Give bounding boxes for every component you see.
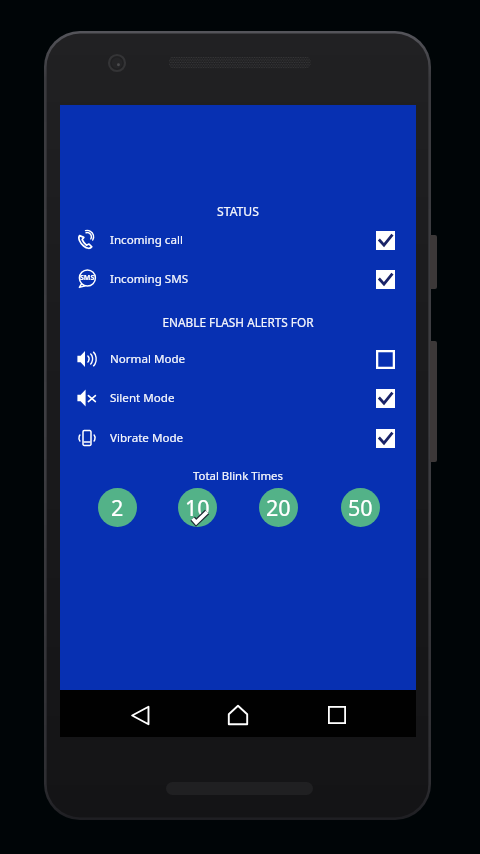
button[interactable]: Back	[118, 693, 162, 737]
button[interactable]: Vibrate Mode	[60, 418, 416, 458]
button[interactable]: Incoming call	[60, 220, 416, 260]
staticText: ENABLE FLASH ALERTS FOR	[60, 314, 416, 330]
staticText: Incoming SMS	[110, 271, 189, 287]
staticText: Silent Mode	[110, 390, 175, 406]
button[interactable]: 50	[341, 488, 380, 527]
staticText: STATUS	[60, 203, 416, 220]
staticText: 50	[348, 493, 373, 522]
button[interactable]: Silent Mode	[60, 378, 416, 418]
button[interactable]: 10	[178, 488, 217, 527]
button[interactable]: Normal Mode	[60, 339, 416, 379]
button[interactable]: Recent apps	[315, 693, 359, 737]
staticText: SMS	[80, 273, 95, 283]
button[interactable]: 20	[259, 488, 298, 527]
staticText: Total Blink Times	[60, 468, 416, 484]
staticText: Incoming call	[110, 232, 183, 248]
staticText: Normal Mode	[110, 351, 186, 367]
staticText: 10	[185, 493, 210, 522]
staticText: 20	[266, 493, 291, 522]
button[interactable]: Home	[216, 693, 260, 737]
staticText: Vibrate Mode	[110, 430, 184, 446]
button[interactable]: 2	[98, 488, 137, 527]
button[interactable]: SMS	[60, 259, 416, 299]
staticText: 2	[111, 493, 124, 522]
